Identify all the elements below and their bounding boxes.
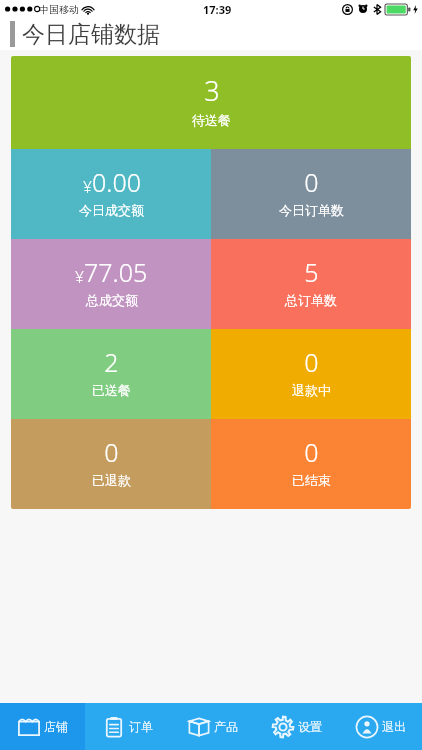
button[interactable]: 3 bbox=[11, 56, 411, 149]
staticText: 今日店铺数据 bbox=[22, 20, 160, 49]
staticText: 3 bbox=[204, 72, 220, 109]
staticText: ¥ bbox=[75, 266, 84, 287]
staticText: 产品 bbox=[214, 719, 238, 734]
staticText: 订单 bbox=[129, 719, 153, 734]
staticText: 77.05 bbox=[84, 255, 148, 289]
button[interactable]: 设置 bbox=[254, 703, 338, 750]
button[interactable]: 退出 bbox=[338, 703, 422, 750]
staticText: 退款中 bbox=[292, 382, 331, 398]
staticText: 待送餐 bbox=[192, 112, 231, 128]
button[interactable]: 5 bbox=[211, 239, 411, 329]
staticText: 退出 bbox=[382, 719, 406, 734]
staticText: 今日成交额 bbox=[79, 202, 144, 218]
button[interactable]: 0 bbox=[211, 329, 411, 419]
staticText: 0 bbox=[304, 165, 319, 199]
button[interactable]: 产品 bbox=[170, 703, 254, 750]
button[interactable]: 订单 bbox=[85, 703, 170, 750]
button[interactable]: 0 bbox=[11, 419, 211, 509]
button[interactable]: ¥ bbox=[11, 239, 211, 329]
staticText: 已结束 bbox=[292, 472, 331, 488]
staticText: 17:39 bbox=[203, 2, 232, 17]
staticText: 0 bbox=[304, 435, 319, 469]
staticText: ¥ bbox=[83, 176, 92, 197]
button[interactable]: 0 bbox=[211, 149, 411, 239]
button[interactable]: 店铺 bbox=[0, 703, 85, 750]
button[interactable]: 0 bbox=[211, 419, 411, 509]
staticText: 2 bbox=[104, 345, 119, 379]
staticText: 总订单数 bbox=[285, 292, 337, 308]
staticText: 今日订单数 bbox=[279, 202, 344, 218]
staticText: 0 bbox=[304, 345, 319, 379]
button[interactable]: ¥ bbox=[11, 149, 211, 239]
staticText: 已送餐 bbox=[92, 382, 131, 398]
staticText: 0.00 bbox=[92, 165, 141, 199]
staticText: 总成交额 bbox=[86, 292, 138, 308]
staticText: 店铺 bbox=[44, 719, 68, 734]
staticText: 5 bbox=[304, 255, 319, 289]
staticText: 设置 bbox=[298, 719, 322, 734]
staticText: 0 bbox=[104, 435, 119, 469]
button[interactable]: 2 bbox=[11, 329, 211, 419]
staticText: 中国移动 bbox=[39, 3, 79, 16]
staticText: 已退款 bbox=[92, 472, 131, 488]
